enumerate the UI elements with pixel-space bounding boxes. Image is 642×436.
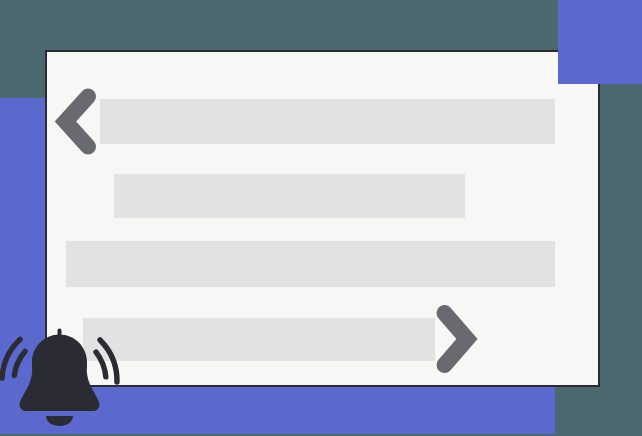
button[interactable]: Next	[429, 302, 485, 378]
button[interactable]: Notifications	[0, 322, 126, 436]
button[interactable]: Back	[50, 84, 102, 160]
button[interactable]	[83, 318, 435, 361]
